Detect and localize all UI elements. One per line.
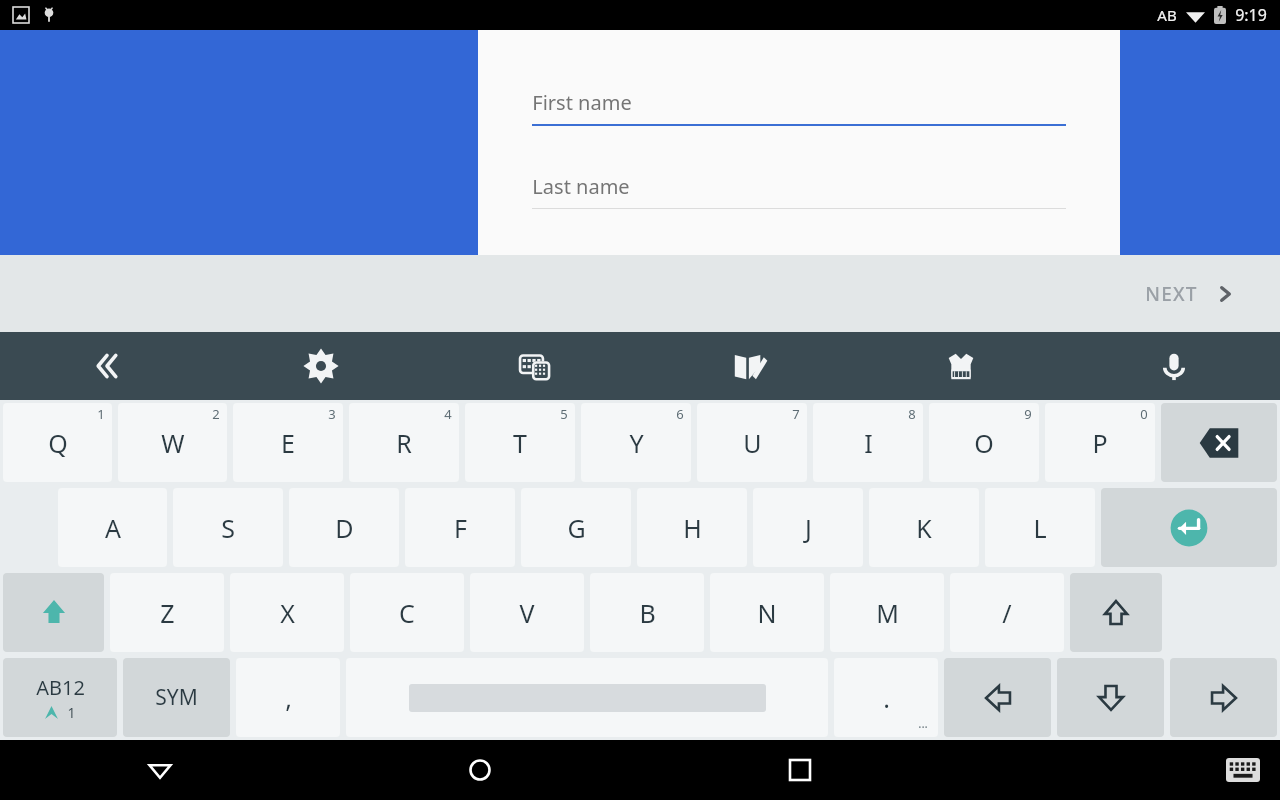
button[interactable]: Recents (640, 740, 960, 800)
button[interactable]: D (289, 488, 399, 567)
staticText: Q (48, 426, 68, 460)
staticText: 0 (1140, 405, 1148, 423)
staticText: Last name (532, 173, 630, 200)
button[interactable]: 0 (1045, 403, 1155, 482)
button[interactable]: 3 (233, 403, 343, 482)
button[interactable]: Caps lock (1070, 573, 1162, 652)
staticText: O (974, 426, 994, 460)
staticText: 5 (560, 405, 568, 423)
staticText: U (743, 426, 762, 460)
staticText: J (805, 511, 812, 545)
button[interactable]: F (405, 488, 515, 567)
staticText: , (285, 681, 292, 715)
button[interactable]: 8 (813, 403, 923, 482)
button[interactable]: Move right (1170, 658, 1277, 737)
staticText: 1 (97, 405, 105, 423)
staticText: G (567, 511, 586, 545)
button[interactable]: S (173, 488, 283, 567)
staticText: SYM (155, 683, 198, 712)
button[interactable]: M (830, 573, 944, 652)
button[interactable]: C (350, 573, 464, 652)
staticText: B (639, 596, 656, 630)
staticText: D (335, 511, 354, 545)
button[interactable]: N (710, 573, 824, 652)
staticText: 8 (908, 405, 916, 423)
staticText: N (757, 596, 777, 630)
staticText: T (513, 426, 527, 460)
button[interactable]: B (590, 573, 704, 652)
button[interactable]: 5 (465, 403, 575, 482)
staticText: / (1002, 596, 1012, 630)
button[interactable]: Back (0, 740, 320, 800)
button[interactable]: NEXT (1135, 269, 1244, 319)
button[interactable]: 9 (929, 403, 1039, 482)
button[interactable]: X (230, 573, 344, 652)
button[interactable]: Shift (3, 573, 104, 652)
button[interactable]: Backspace (1161, 403, 1277, 482)
staticText: W (161, 426, 185, 460)
staticText: 1 (67, 703, 76, 722)
button[interactable]: Keyboard layout (428, 332, 641, 400)
staticText: H (683, 511, 702, 545)
button[interactable]: Switch keyboard (1226, 758, 1260, 782)
button[interactable]: Move left (944, 658, 1051, 737)
staticText: 7 (792, 405, 800, 423)
staticText: P (1092, 426, 1108, 460)
staticText: S (221, 511, 235, 545)
button[interactable]: V (470, 573, 584, 652)
button[interactable]: Z (110, 573, 224, 652)
staticText: C (399, 596, 415, 630)
button[interactable]: 2 (118, 403, 227, 482)
button[interactable]: Enter (1101, 488, 1277, 567)
button[interactable]: Themes (854, 332, 1067, 400)
button[interactable]: 4 (349, 403, 459, 482)
button[interactable]: J (753, 488, 863, 567)
button[interactable]: G (521, 488, 631, 567)
button[interactable]: Move down (1057, 658, 1164, 737)
staticText: 2 (212, 405, 220, 423)
button[interactable]: Settings (214, 332, 428, 400)
staticText: F (454, 511, 467, 545)
button[interactable]: AB12 (3, 658, 117, 737)
button[interactable]: Home (320, 740, 640, 800)
button[interactable]: 6 (581, 403, 691, 482)
button[interactable]: A (58, 488, 167, 567)
staticText: Z (160, 596, 175, 630)
button[interactable]: K (869, 488, 979, 567)
button[interactable]: 1 (3, 403, 112, 482)
staticText: K (916, 511, 932, 545)
button[interactable]: 7 (697, 403, 807, 482)
staticText: First name (532, 89, 632, 116)
staticText: L (1033, 511, 1047, 545)
staticText: M (876, 596, 899, 630)
button[interactable]: Space (346, 658, 828, 737)
staticText: E (281, 426, 295, 460)
button[interactable]: Dictionary (641, 332, 854, 400)
staticText: AB (1157, 5, 1177, 25)
button[interactable]: Collapse keyboard (0, 332, 214, 400)
staticText: 9:19 (1235, 4, 1267, 26)
button[interactable]: Last name (532, 170, 1066, 200)
staticText: AB12 (36, 674, 85, 701)
staticText: A (105, 511, 121, 545)
button[interactable]: First name (532, 82, 1066, 116)
staticText: ... (918, 715, 928, 731)
button[interactable]: . (834, 658, 938, 737)
staticText: 4 (444, 405, 452, 423)
staticText: R (396, 426, 412, 460)
staticText: 6 (676, 405, 684, 423)
staticText: 3 (328, 405, 336, 423)
staticText: 9 (1024, 405, 1032, 423)
staticText: I (864, 426, 873, 460)
button[interactable]: Voice input (1067, 332, 1280, 400)
staticText: . (883, 681, 890, 715)
button[interactable]: , (236, 658, 340, 737)
button[interactable]: L (985, 488, 1095, 567)
button[interactable]: H (637, 488, 747, 567)
button[interactable]: / (950, 573, 1064, 652)
staticText: Y (629, 426, 644, 460)
staticText: V (519, 596, 535, 630)
button[interactable]: SYM (123, 658, 230, 737)
staticText: X (280, 596, 295, 630)
staticText: NEXT (1145, 281, 1198, 307)
